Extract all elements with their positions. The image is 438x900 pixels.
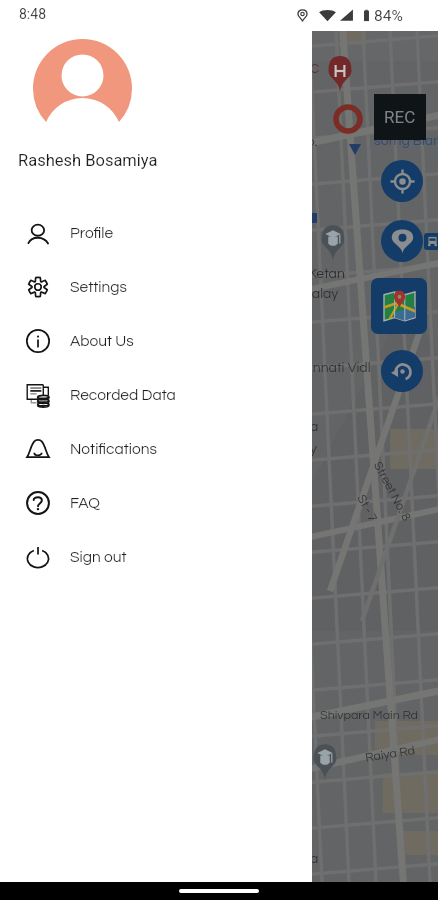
button[interactable]: Settings xyxy=(0,260,312,314)
staticText: Profile xyxy=(70,225,114,241)
staticText: Street No. 8 xyxy=(371,460,413,523)
button[interactable]: Sign out xyxy=(0,530,312,584)
staticText: y xyxy=(310,442,317,456)
staticText: Raiya Rd xyxy=(364,744,417,765)
button[interactable]: Open in Maps xyxy=(371,278,427,334)
button[interactable]: Profile xyxy=(0,206,312,260)
staticText: 84% xyxy=(374,7,403,25)
staticText: About Us xyxy=(70,333,134,349)
staticText: o. xyxy=(307,135,318,149)
button[interactable]: History xyxy=(381,350,423,392)
staticText: a xyxy=(310,420,319,434)
button[interactable]: About Us xyxy=(0,314,312,368)
staticText: sorng Blan xyxy=(374,134,438,148)
staticText: Recorded Data xyxy=(70,387,176,403)
staticText: Ketan xyxy=(308,267,345,281)
staticText: Shivpara Main Rd xyxy=(320,709,419,722)
staticText: Rashesh Bosamiya xyxy=(18,151,158,170)
staticText: yalay xyxy=(305,287,339,301)
button[interactable]: Notifications xyxy=(0,422,312,476)
staticText: 8:48 xyxy=(19,6,46,22)
button[interactable]: Nearby stops xyxy=(381,220,423,262)
staticText: REC xyxy=(384,107,416,127)
staticText: Settings xyxy=(70,279,127,295)
button[interactable]: FAQ xyxy=(0,476,312,530)
staticText: Notifications xyxy=(70,441,157,457)
staticText: Unnati Vidl xyxy=(303,361,371,375)
staticText: St - 7 xyxy=(354,493,379,524)
button[interactable]: REC xyxy=(374,94,426,140)
staticText: FAQ xyxy=(70,495,100,511)
staticText: C xyxy=(310,62,320,76)
button[interactable]: Recorded Data xyxy=(0,368,312,422)
button[interactable]: My location xyxy=(381,160,423,202)
staticText: a xyxy=(310,852,319,866)
staticText: Sign out xyxy=(70,549,127,565)
